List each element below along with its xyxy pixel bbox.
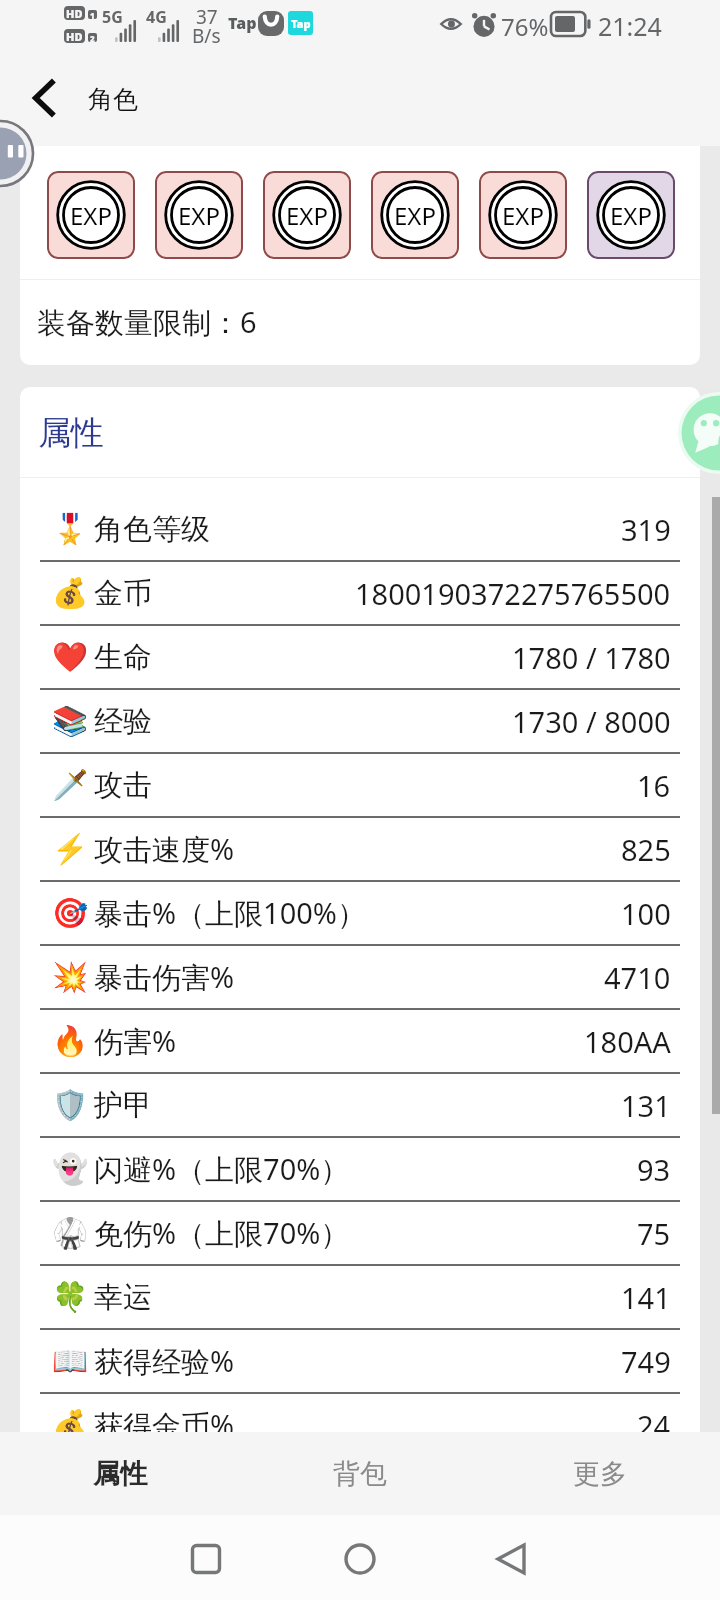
staticText: 4710 — [604, 958, 671, 997]
button[interactable]: 💥 — [20, 946, 700, 1010]
button[interactable]: EXP — [371, 171, 459, 259]
button[interactable]: 🗡️ — [20, 754, 700, 818]
button[interactable]: EXP — [263, 171, 351, 259]
button[interactable]: EXP — [587, 171, 675, 259]
staticText: 护甲 — [94, 1087, 152, 1124]
staticText: ⚡ — [52, 832, 89, 866]
staticText: 获得经验% — [94, 1341, 235, 1381]
staticText: EXP — [394, 199, 436, 232]
staticText: 属性 — [38, 412, 104, 454]
staticText: 免伤%（上限70%） — [94, 1213, 350, 1253]
staticText: 16 — [637, 766, 671, 805]
button[interactable]: WeChat shortcut — [678, 392, 720, 474]
button[interactable]: 🛡️ — [20, 1074, 700, 1138]
staticText: Tap — [228, 12, 257, 34]
staticText: 更多 — [573, 1457, 627, 1491]
staticText: 319 — [621, 510, 671, 549]
staticText: 📚 — [52, 704, 89, 738]
staticText: 角色 — [88, 84, 138, 115]
staticText: 背包 — [333, 1457, 387, 1491]
staticText: 100 — [621, 894, 671, 933]
button[interactable]: 🔥 — [20, 1010, 700, 1074]
staticText: 生命 — [94, 639, 152, 676]
staticText: 暴击%（上限100%） — [94, 893, 366, 933]
staticText: 21:24 — [598, 9, 662, 43]
staticText: 🍀 — [52, 1280, 89, 1314]
staticText: 180AA — [584, 1022, 671, 1061]
staticText: 24 — [637, 1406, 671, 1432]
staticText: 1 — [90, 10, 95, 19]
staticText: 37 — [196, 4, 218, 30]
staticText: 💰 — [52, 576, 89, 610]
button[interactable]: EXP — [479, 171, 567, 259]
button[interactable]: 属性 — [0, 1432, 240, 1515]
staticText: 749 — [621, 1342, 671, 1381]
button[interactable]: Floating assistant — [0, 119, 35, 188]
button[interactable]: 📚 — [20, 690, 700, 754]
staticText: 1730 / 8000 — [512, 702, 671, 741]
button[interactable]: 👻 — [20, 1138, 700, 1202]
staticText: 🔥 — [52, 1024, 89, 1058]
button[interactable]: 🎯 — [20, 882, 700, 946]
button[interactable]: ❤️ — [20, 626, 700, 690]
staticText: Tap — [291, 16, 311, 31]
button[interactable]: 🎖️ — [20, 498, 700, 562]
button[interactable]: EXP — [47, 171, 135, 259]
button[interactable]: ⚡ — [20, 818, 700, 882]
button[interactable]: 📖 — [20, 1330, 700, 1394]
staticText: 获得金币% — [94, 1405, 235, 1432]
staticText: EXP — [70, 199, 112, 232]
staticText: 闪避%（上限70%） — [94, 1149, 350, 1189]
staticText: 幸运 — [94, 1279, 152, 1316]
staticText: 1780 / 1780 — [512, 638, 671, 677]
staticText: 💥 — [52, 960, 89, 994]
staticText: HD — [66, 29, 83, 43]
staticText: EXP — [502, 199, 544, 232]
staticText: 2 — [90, 33, 95, 42]
staticText: 141 — [621, 1278, 671, 1317]
staticText: 🛡️ — [52, 1088, 89, 1122]
staticText: B/s — [192, 23, 221, 49]
staticText: 攻击 — [94, 767, 152, 804]
staticText: EXP — [610, 199, 652, 232]
staticText: EXP — [178, 199, 220, 232]
staticText: EXP — [286, 199, 328, 232]
staticText: 🥋 — [52, 1216, 89, 1250]
button[interactable]: 🥋 — [20, 1202, 700, 1266]
staticText: 💰 — [52, 1408, 89, 1432]
staticText: ❤️ — [52, 640, 89, 674]
staticText: 金币 — [94, 575, 152, 612]
button[interactable]: Home — [344, 1543, 376, 1575]
staticText: 角色等级 — [94, 511, 210, 548]
staticText: 5G — [102, 6, 123, 28]
staticText: 暴击伤害% — [94, 957, 235, 997]
staticText: 76% — [501, 10, 549, 43]
staticText: 4G — [146, 6, 167, 28]
button[interactable]: Back — [496, 1543, 526, 1575]
staticText: HD — [66, 6, 83, 20]
staticText: 伤害% — [94, 1021, 177, 1061]
button[interactable]: Back — [18, 65, 70, 129]
button[interactable]: 💰 — [20, 562, 700, 626]
staticText: 装备数量限制：6 — [37, 302, 257, 342]
staticText: 攻击速度% — [94, 829, 235, 869]
staticText: 1800190372275765500 — [355, 574, 671, 613]
staticText: 🗡️ — [52, 768, 89, 802]
button[interactable]: EXP — [155, 171, 243, 259]
button[interactable]: Recent apps — [191, 1544, 221, 1574]
staticText: 📖 — [52, 1344, 89, 1378]
button[interactable]: 🍀 — [20, 1266, 700, 1330]
staticText: 经验 — [94, 703, 152, 740]
button[interactable]: 背包 — [240, 1432, 480, 1515]
staticText: 🎯 — [52, 896, 89, 930]
button[interactable]: 💰 — [20, 1394, 700, 1432]
staticText: 75 — [637, 1214, 671, 1253]
staticText: 🎖️ — [52, 512, 89, 546]
staticText: 👻 — [52, 1152, 89, 1186]
staticText: 131 — [621, 1086, 671, 1125]
button[interactable]: 更多 — [480, 1432, 720, 1515]
staticText: 825 — [621, 830, 671, 869]
staticText: 属性 — [93, 1457, 147, 1491]
staticText: 93 — [637, 1150, 671, 1189]
